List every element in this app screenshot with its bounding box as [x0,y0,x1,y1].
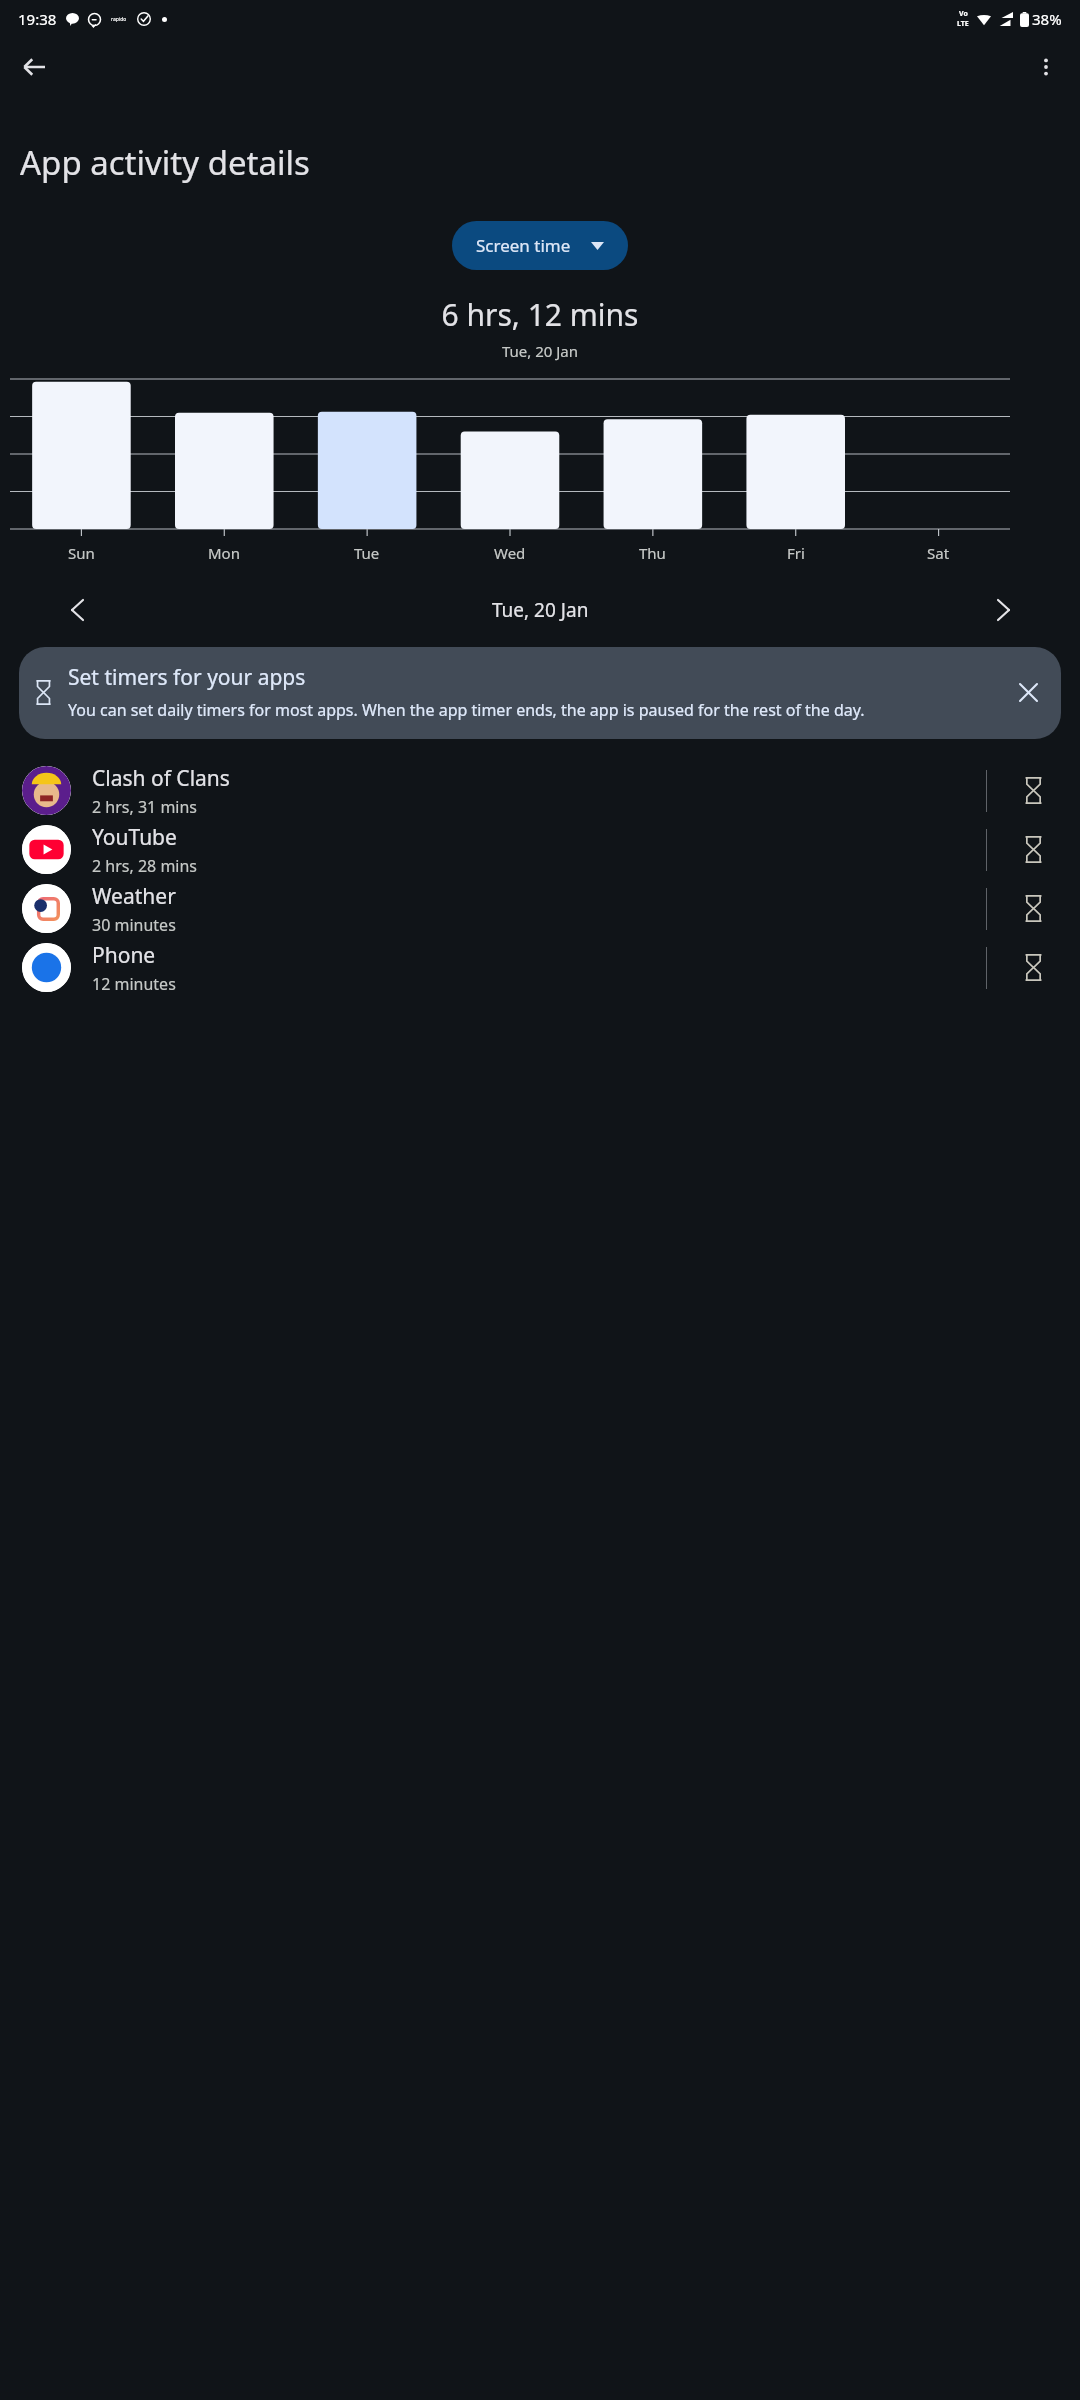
staticText: rapido [111,16,127,23]
button[interactable]: Set timer for Clash of Clans [987,761,1080,820]
button[interactable]: Phone [0,938,1080,997]
button[interactable]: Set timers for your apps [19,647,1061,739]
staticText: Wed [494,543,526,563]
button[interactable]: Set timer for Phone [987,938,1080,997]
staticText: LTE [957,19,969,29]
button[interactable]: Screen time [452,221,628,270]
staticText: Clash of Clans [92,764,230,793]
staticText: Fri [787,543,805,563]
button[interactable]: Clash of Clans [0,761,1080,820]
staticText: You can set daily timers for most apps. … [68,699,865,721]
staticText: Tue [354,543,380,563]
staticText: Screen time [476,234,571,257]
button[interactable]: YouTube [0,820,1080,879]
button[interactable]: More options [1022,43,1070,91]
staticText: Weather [92,882,176,911]
staticText: Mon [208,543,240,563]
staticText: Vo [959,9,968,19]
staticText: 6 hrs, 12 mins [0,294,1080,335]
staticText: 2 hrs, 28 mins [92,855,198,877]
staticText: App activity details [20,140,310,185]
button[interactable]: Weather [0,879,1080,938]
staticText: Tue, 20 Jan [0,341,1080,361]
staticText: 12 minutes [92,973,176,995]
staticText: 38% [1032,9,1062,29]
staticText: 19:38 [18,9,57,29]
button[interactable]: Set timer for Weather [987,879,1080,938]
staticText: Tue, 20 Jan [492,597,589,623]
staticText: Thu [639,543,666,563]
staticText: Set timers for your apps [68,663,306,692]
staticText: Sun [68,543,95,563]
staticText: Sat [927,543,950,563]
button[interactable]: Previous day [56,589,98,631]
staticText: 2 hrs, 31 mins [92,796,198,818]
staticText: Phone [92,941,156,970]
button[interactable]: Set timer for YouTube [987,820,1080,879]
button[interactable]: Back [10,43,58,91]
button[interactable]: Dismiss [1009,673,1047,711]
button[interactable]: Next day [982,589,1024,631]
staticText: 30 minutes [92,914,176,936]
staticText: YouTube [92,823,177,852]
